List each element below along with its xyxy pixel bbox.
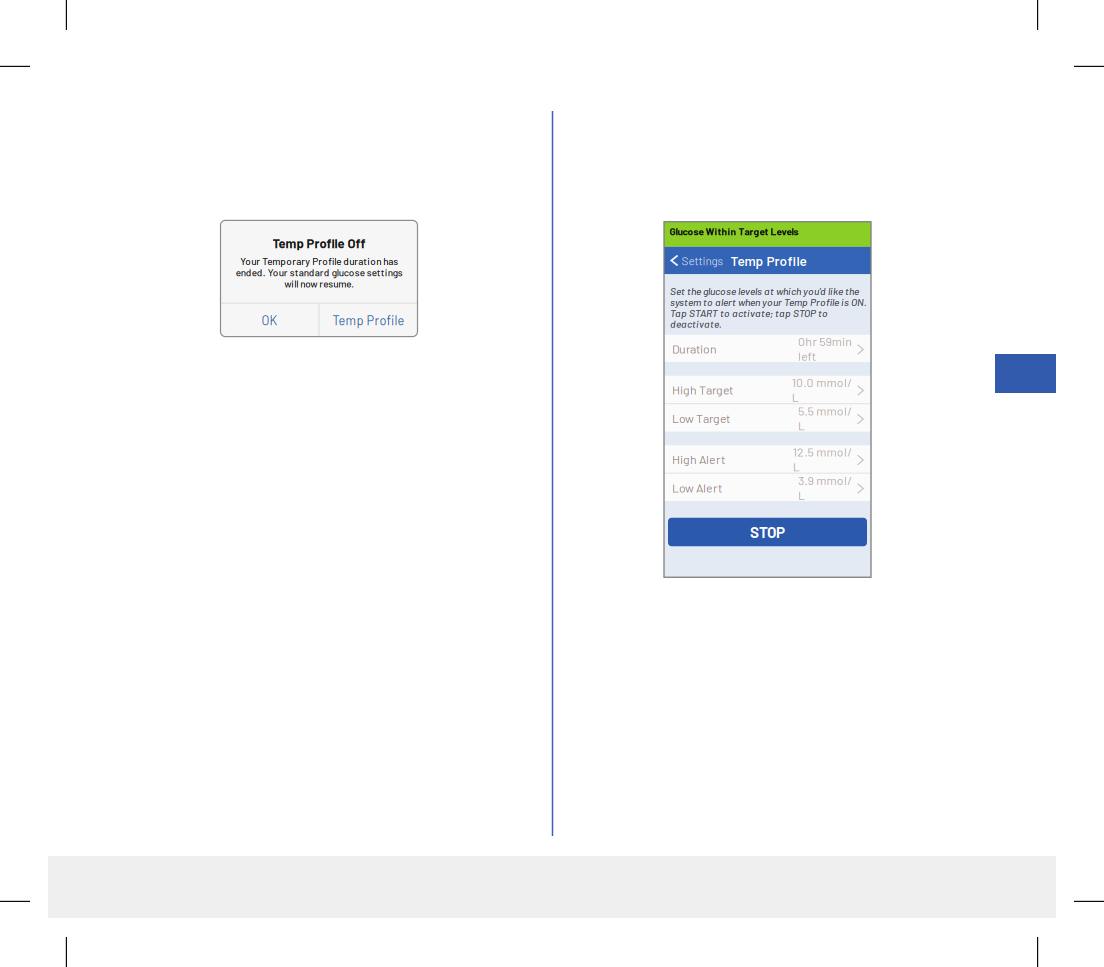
staticText: High Target: [672, 382, 733, 397]
staticText: Settings: [681, 253, 723, 268]
button[interactable]: Low Target: [664, 404, 871, 432]
staticText: STOP: [750, 523, 785, 541]
staticText: 0hr 59min left: [798, 334, 852, 363]
staticText: 10.0 mmol/L: [792, 375, 852, 404]
staticText: High Alert: [672, 452, 725, 466]
button[interactable]: Low Alert: [664, 474, 871, 501]
staticText: 3.9 mmol/L: [798, 473, 852, 502]
staticText: 5.5 mmol/L: [798, 403, 852, 433]
button[interactable]: OK: [220, 304, 318, 337]
staticText: 12.5 mmol/L: [793, 444, 852, 474]
staticText: Temp Profile: [730, 252, 806, 269]
button[interactable]: Temp Profile: [319, 304, 417, 337]
button[interactable]: STOP: [668, 518, 867, 546]
staticText: Low Target: [672, 411, 730, 425]
staticText: Glucose Within Target Levels: [669, 225, 798, 237]
staticText: Temp Profile Off: [272, 235, 365, 251]
staticText: Set the glucose levels at which you'd li…: [670, 285, 867, 330]
staticText: OK: [261, 312, 277, 328]
button[interactable]: Settings: [670, 247, 730, 274]
button[interactable]: High Target: [664, 376, 871, 403]
staticText: Duration: [672, 341, 717, 356]
staticText: Your Temporary Profile duration has ende…: [235, 255, 402, 290]
staticText: Low Alert: [672, 480, 722, 495]
button[interactable]: High Alert: [664, 445, 871, 473]
staticText: Temp Profile: [332, 312, 404, 328]
button[interactable]: Duration: [664, 335, 871, 362]
